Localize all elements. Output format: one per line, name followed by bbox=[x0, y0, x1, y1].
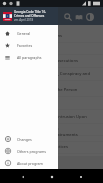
staticText: Georgia Code Title 16. Crimes and Offens… bbox=[14, 10, 46, 18]
button[interactable]: Chapter 9. Forgery Upon Instruments bbox=[0, 128, 103, 141]
button[interactable]: Search bbox=[62, 11, 73, 22]
button[interactable]: Chapter 5. Crimes Against the Person bbox=[0, 83, 103, 96]
button[interactable]: Changes bbox=[0, 133, 58, 145]
button[interactable]: Chapter 11. Public Indecency bbox=[0, 153, 103, 166]
button[interactable]: Chapter 6. Sexual Offenses bbox=[0, 96, 103, 109]
staticText: Chapter 1. General Provisions bbox=[4, 33, 63, 39]
button[interactable]: Bookmarks bbox=[73, 11, 84, 22]
button[interactable]: General bbox=[0, 27, 58, 39]
staticText: Chapter 10. Fraudulent Practices bbox=[4, 144, 68, 150]
staticText: Chapter 7. Damage to and Intrusion Upon bbox=[4, 114, 87, 120]
button[interactable]: Chapter 4. Inchoate Crimes, Conspiracy a… bbox=[0, 67, 103, 80]
button[interactable]: Recent apps bbox=[74, 170, 87, 183]
button[interactable]: Chapter 2. Criminal Liability bbox=[0, 41, 103, 54]
staticText: Others programs bbox=[17, 149, 47, 154]
button[interactable]: Chapter 3. Limitation on Prosecutions bbox=[0, 54, 103, 67]
staticText: Chapter 2. Criminal Liability bbox=[4, 45, 59, 51]
button[interactable]: Back bbox=[16, 170, 29, 183]
button[interactable]: All paragraphs bbox=[0, 51, 58, 63]
button[interactable]: About program bbox=[0, 157, 58, 169]
staticText: All paragraphs bbox=[17, 55, 42, 60]
staticText: Chapter 11. Public Indecency bbox=[4, 157, 61, 163]
staticText: Changes bbox=[17, 137, 32, 142]
button[interactable]: Home bbox=[45, 170, 58, 183]
staticText: About program bbox=[17, 161, 43, 166]
button[interactable]: Favorites bbox=[0, 39, 58, 51]
button[interactable]: Chapter 10. Fraudulent Practices bbox=[0, 140, 103, 153]
button[interactable]: Chapter 1. General Provisions bbox=[0, 29, 103, 42]
button[interactable]: Georgia Code Title 16. Crimes and Offens… bbox=[0, 7, 58, 25]
staticText: Chapter 5. Crimes Against the Person bbox=[4, 87, 78, 93]
staticText: Chapter 8. Offenses Against bbox=[4, 126, 59, 132]
staticText: Chapter 9. Forgery Upon Instruments bbox=[4, 132, 78, 138]
staticText: Chapter 4. Inchoate Crimes, Conspiracy a… bbox=[4, 71, 91, 77]
button[interactable]: Chapter 8. Offenses Against bbox=[0, 122, 103, 135]
staticText: Chapter 3. Limitation on Prosecutions bbox=[4, 58, 78, 64]
button[interactable]: Others programs bbox=[0, 145, 58, 157]
staticText: General bbox=[17, 31, 31, 36]
button[interactable]: Chapter 7. Damage to and Intrusion Upon bbox=[0, 110, 103, 123]
button[interactable]: Day night theme bbox=[84, 11, 95, 22]
staticText: ver. April 2018 bbox=[14, 18, 34, 22]
staticText: Favorites bbox=[17, 43, 33, 48]
